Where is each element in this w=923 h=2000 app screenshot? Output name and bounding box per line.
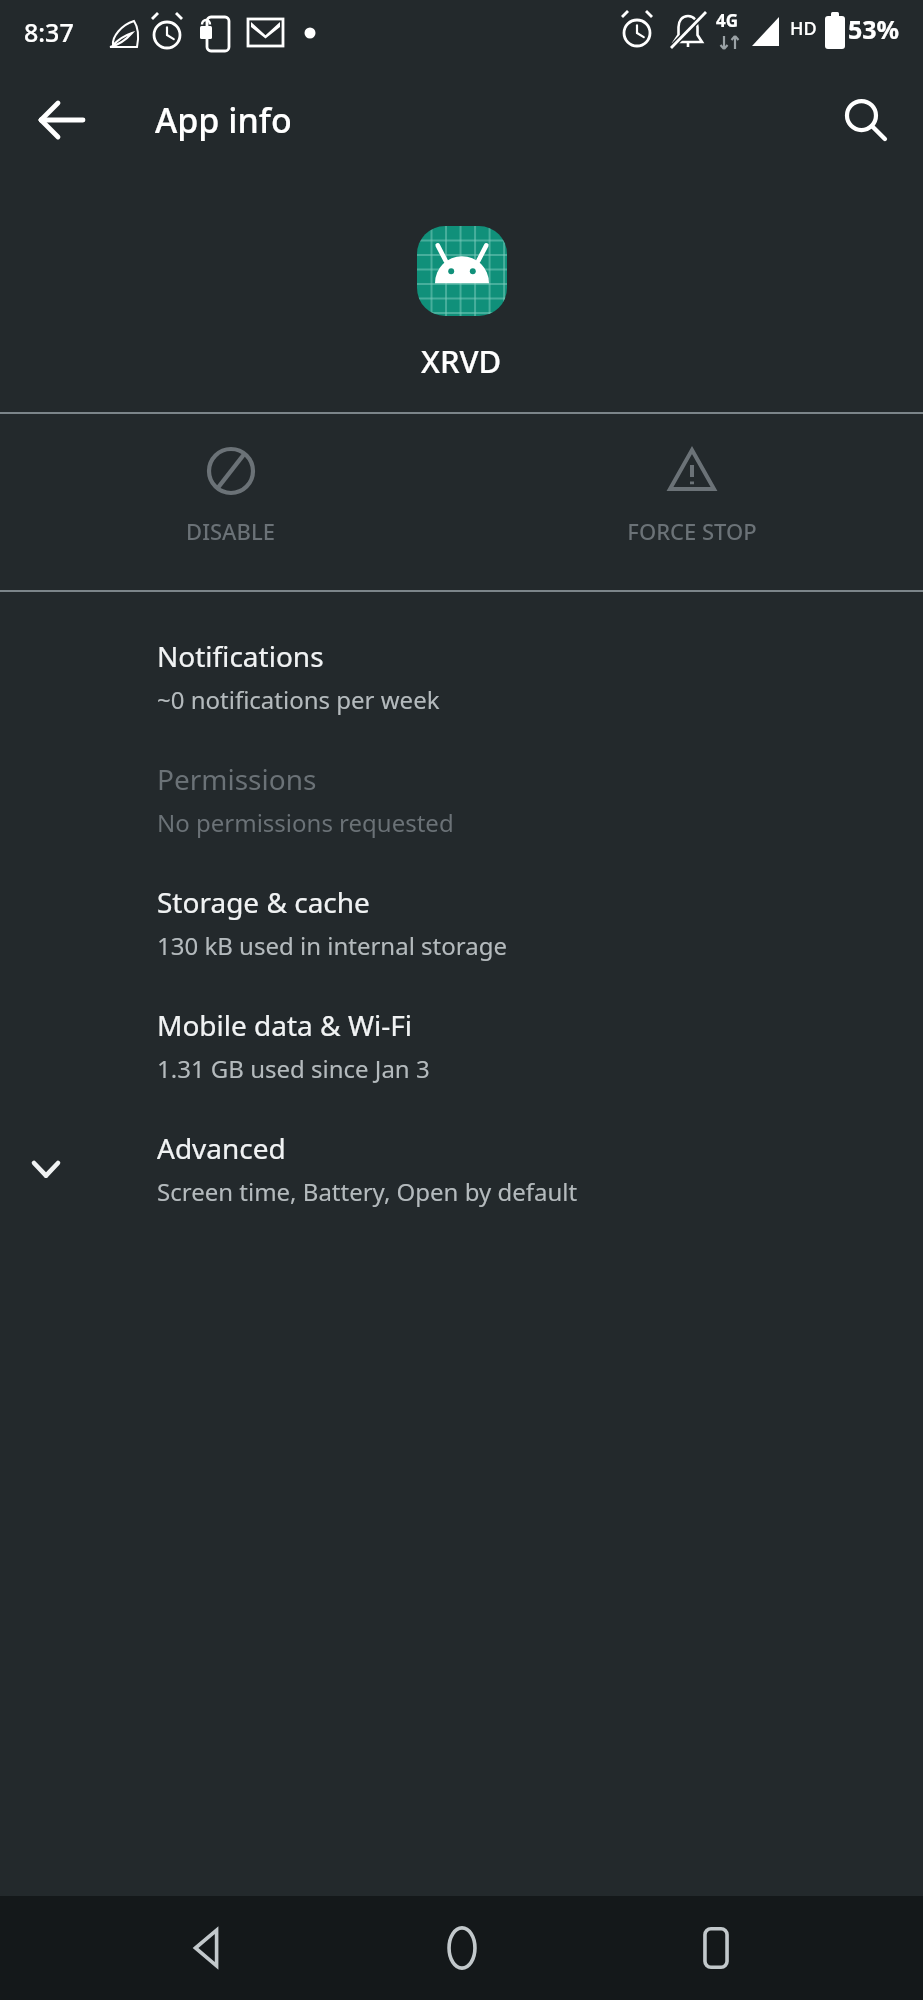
button[interactable]: Notifications xyxy=(0,616,923,739)
staticText: Storage & cache xyxy=(157,883,370,921)
staticText: Permissions xyxy=(157,760,317,798)
staticText: No permissions requested xyxy=(157,806,454,839)
button[interactable]: Permissions xyxy=(0,739,923,862)
button[interactable]: Mobile data & Wi-Fi xyxy=(0,985,923,1108)
staticText: DISABLE xyxy=(186,516,275,546)
staticText: 53% xyxy=(848,12,900,46)
button[interactable]: DISABLE xyxy=(0,414,461,546)
staticText: HD xyxy=(790,16,817,41)
button[interactable]: Storage & cache xyxy=(0,862,923,985)
staticText: 8:37 xyxy=(24,15,74,49)
staticText: App info xyxy=(155,97,292,143)
staticText: 4G xyxy=(716,9,739,32)
button[interactable]: Home xyxy=(414,1900,510,1996)
button[interactable]: Navigate up xyxy=(26,84,98,156)
staticText: Advanced xyxy=(157,1129,286,1167)
staticText: Screen time, Battery, Open by default xyxy=(157,1175,578,1208)
button[interactable]: Advanced xyxy=(0,1108,923,1231)
staticText: ~0 notifications per week xyxy=(157,683,440,716)
button[interactable]: FORCE STOP xyxy=(461,414,923,546)
button[interactable]: Search xyxy=(831,86,899,154)
staticText: Mobile data & Wi-Fi xyxy=(157,1006,412,1044)
button[interactable]: Recent apps xyxy=(668,1900,764,1996)
staticText: 130 kB used in internal storage xyxy=(157,929,507,962)
staticText: Notifications xyxy=(157,637,324,675)
staticText: FORCE STOP xyxy=(627,516,757,546)
staticText: 1.31 GB used since Jan 3 xyxy=(157,1052,430,1085)
button[interactable]: Back xyxy=(159,1900,255,1996)
staticText: XRVD xyxy=(421,340,502,382)
